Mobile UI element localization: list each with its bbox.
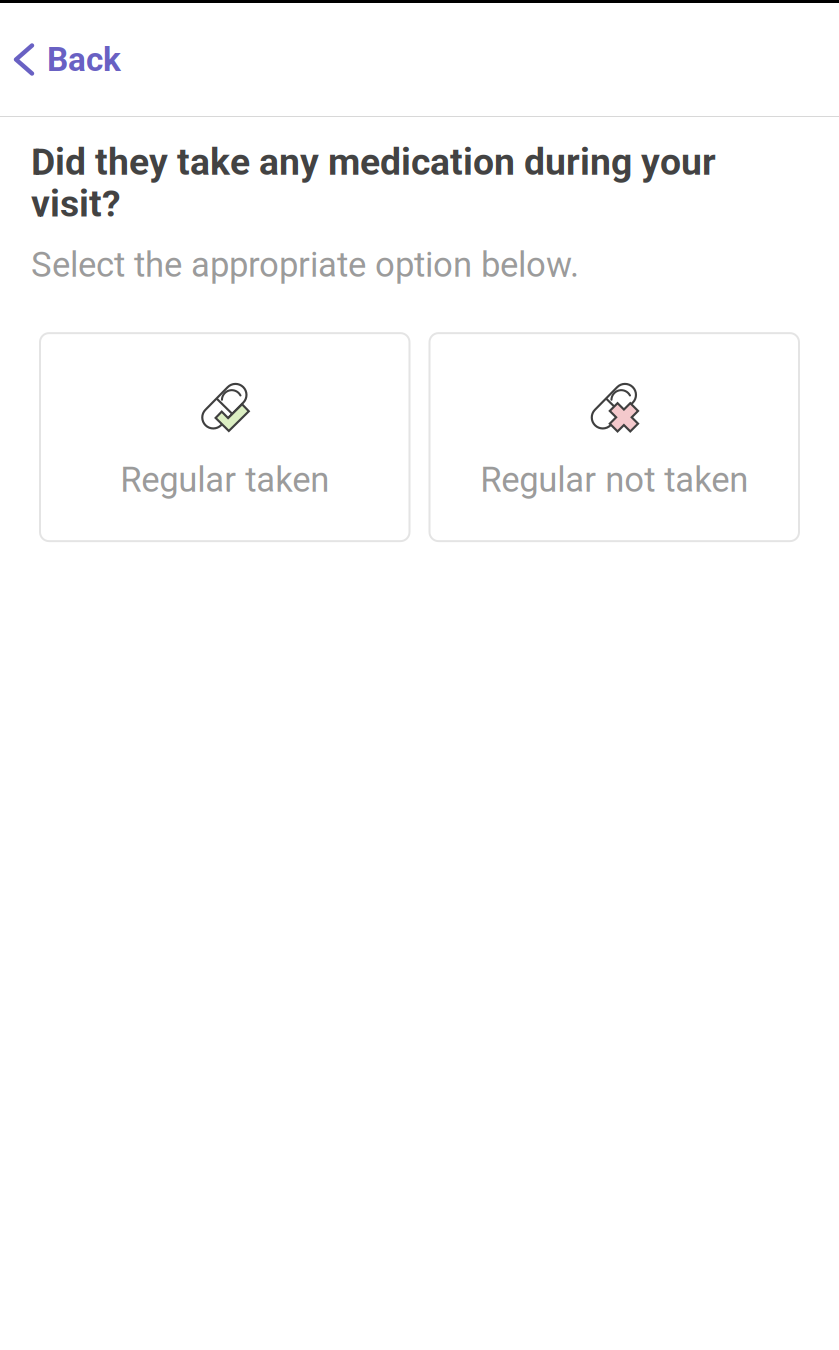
staticText: Regular taken — [120, 459, 329, 500]
button[interactable]: Regular not taken — [429, 333, 799, 541]
button[interactable]: Regular taken — [40, 333, 409, 541]
staticText: Did they take any medication during your… — [31, 140, 716, 225]
staticText: Back — [47, 40, 121, 79]
staticText: Regular not taken — [480, 459, 748, 500]
button[interactable]: Back — [0, 26, 143, 93]
staticText: Select the appropriate option below. — [31, 244, 579, 285]
